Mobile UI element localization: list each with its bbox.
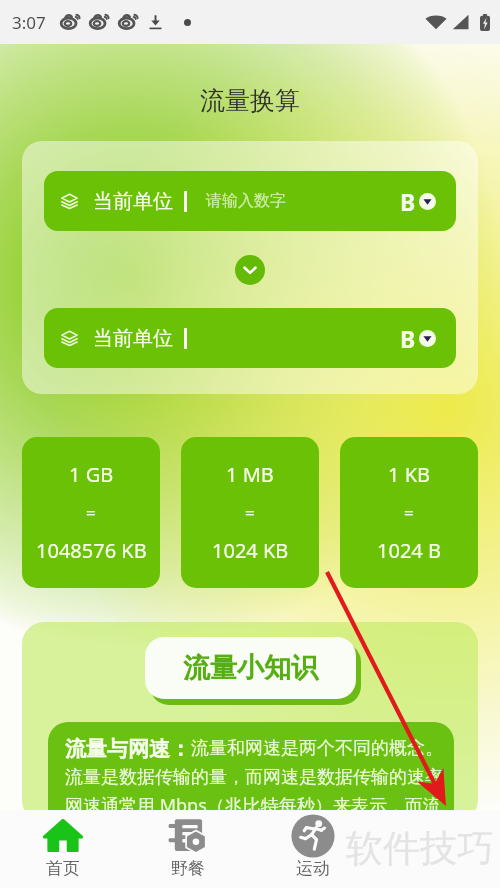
staticText: 1 GB [69, 461, 114, 488]
staticText: B [400, 186, 416, 217]
staticText: 当前单位 [93, 326, 173, 351]
staticText: 1024 KB [212, 537, 289, 564]
staticText: 1 KB [388, 461, 431, 488]
button[interactable]: 1 KB [340, 437, 478, 588]
staticText: 请输入数字 [206, 191, 286, 211]
staticText: 首页 [46, 858, 80, 879]
button[interactable]: 运动 [250, 810, 375, 879]
button[interactable]: 当前单位 [44, 171, 456, 231]
staticText: = [86, 501, 96, 524]
staticText: = [245, 501, 255, 524]
button[interactable]: 1 MB [181, 437, 319, 588]
staticText: 软件技巧 [346, 825, 494, 872]
staticText: 流量是数据传输的量，而网速是数据传输的速率 [65, 766, 443, 789]
button[interactable]: 野餐 [125, 810, 250, 879]
staticText: B [400, 323, 416, 354]
staticText: 1 MB [226, 461, 274, 488]
staticText: 网速通常用 Mbps（兆比特每秒）来表示，而流量 [65, 793, 452, 822]
staticText: 1048576 KB [36, 537, 147, 564]
button[interactable]: 流量小知识 [145, 637, 356, 699]
button[interactable]: Swap units [235, 255, 265, 285]
button[interactable]: 1 GB [22, 437, 160, 588]
staticText: 1024 B [377, 537, 441, 564]
staticText: 流量换算 [0, 85, 500, 116]
staticText: 流量小知识 [183, 651, 318, 685]
button[interactable]: 首页 [0, 810, 125, 879]
staticText: = [404, 501, 414, 524]
staticText: 3:07 [12, 11, 46, 34]
button[interactable]: 当前单位 [44, 308, 456, 368]
staticText: 运动 [296, 858, 330, 879]
staticText: 当前单位 [93, 189, 173, 214]
staticText: 野餐 [171, 858, 205, 879]
staticText: 流量和网速是两个不同的概念。 [191, 737, 443, 760]
staticText: 流量与网速： [65, 736, 191, 762]
